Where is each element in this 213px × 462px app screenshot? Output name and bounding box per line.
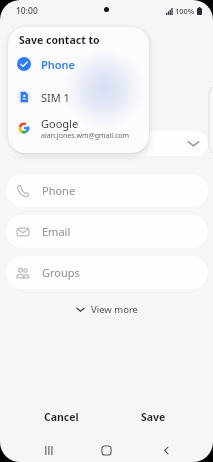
button[interactable]: Google <box>8 113 149 143</box>
staticText: SIM 1 <box>41 90 70 105</box>
button[interactable]: Phone <box>8 49 149 79</box>
staticText: Save <box>141 410 166 424</box>
button[interactable]: Groups <box>6 256 208 289</box>
button[interactable]: Cancel <box>26 406 96 428</box>
button[interactable] <box>6 131 208 156</box>
staticText: Google <box>41 116 79 131</box>
button[interactable]: SIM 1 <box>8 82 149 112</box>
staticText: Email <box>42 224 71 239</box>
button[interactable]: Recents <box>36 439 60 462</box>
button[interactable]: Save <box>118 406 188 428</box>
staticText: alan.jones.wm@gmail.com <box>41 131 130 141</box>
button[interactable]: Back <box>154 439 178 462</box>
button[interactable]: Email <box>6 215 208 248</box>
staticText: View more <box>91 303 138 316</box>
staticText: Phone <box>42 183 76 198</box>
staticText: Save contact to <box>19 33 100 47</box>
staticText: Cancel <box>44 410 79 424</box>
staticText: 10:00 <box>16 5 38 17</box>
button[interactable]: Home <box>94 439 118 462</box>
staticText: 100% <box>175 6 195 16</box>
staticText: Phone <box>41 57 76 72</box>
button[interactable]: Phone <box>6 174 208 207</box>
button[interactable]: View more <box>70 300 144 319</box>
staticText: Groups <box>42 265 80 280</box>
